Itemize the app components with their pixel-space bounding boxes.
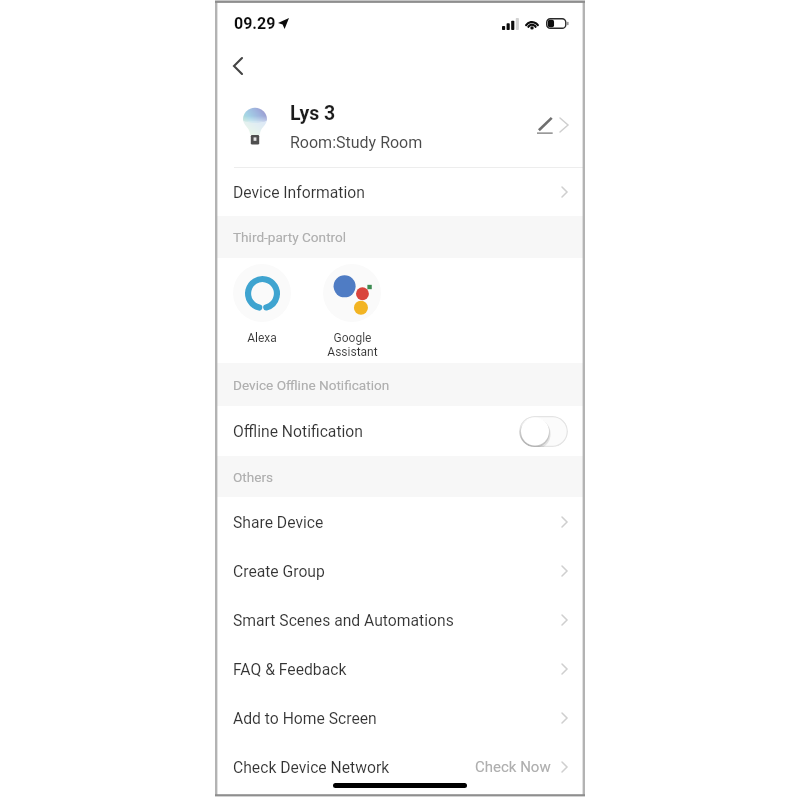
button[interactable]: Offline Notification — [216, 406, 584, 456]
button[interactable]: Smart Scenes and Automations — [216, 595, 584, 644]
staticText: FAQ & Feedback — [233, 660, 347, 678]
button[interactable]: Alexa — [225, 264, 299, 345]
staticText: Share Device — [233, 513, 324, 531]
staticText: Create Group — [233, 562, 325, 580]
staticText: Alexa — [247, 331, 277, 345]
staticText: Offline Notification — [233, 422, 363, 440]
button[interactable]: FAQ & Feedback — [216, 644, 584, 693]
staticText: Room:Study Room — [290, 133, 423, 152]
button[interactable]: Google Assistant — [315, 264, 389, 359]
button[interactable]: Back — [216, 44, 260, 88]
staticText: Others — [233, 469, 274, 485]
button[interactable]: Lys 3 — [216, 92, 584, 168]
staticText: Check Now — [475, 758, 551, 776]
staticText: Lys 3 — [290, 102, 336, 125]
staticText: Device Offline Notification — [233, 377, 390, 393]
button[interactable]: Add to Home Screen — [216, 693, 584, 742]
button[interactable]: Check Device Network — [216, 742, 584, 791]
staticText: Check Device Network — [233, 758, 390, 776]
staticText: Third-party Control — [233, 229, 347, 245]
button[interactable]: Device Information — [216, 168, 584, 216]
button[interactable]: Create Group — [216, 546, 584, 595]
button[interactable]: Share Device — [216, 497, 584, 546]
staticText: Google Assistant — [327, 331, 378, 359]
staticText: Device Information — [233, 183, 365, 201]
staticText: Smart Scenes and Automations — [233, 611, 454, 629]
staticText: 09.29 — [234, 14, 276, 33]
staticText: Add to Home Screen — [233, 709, 377, 727]
